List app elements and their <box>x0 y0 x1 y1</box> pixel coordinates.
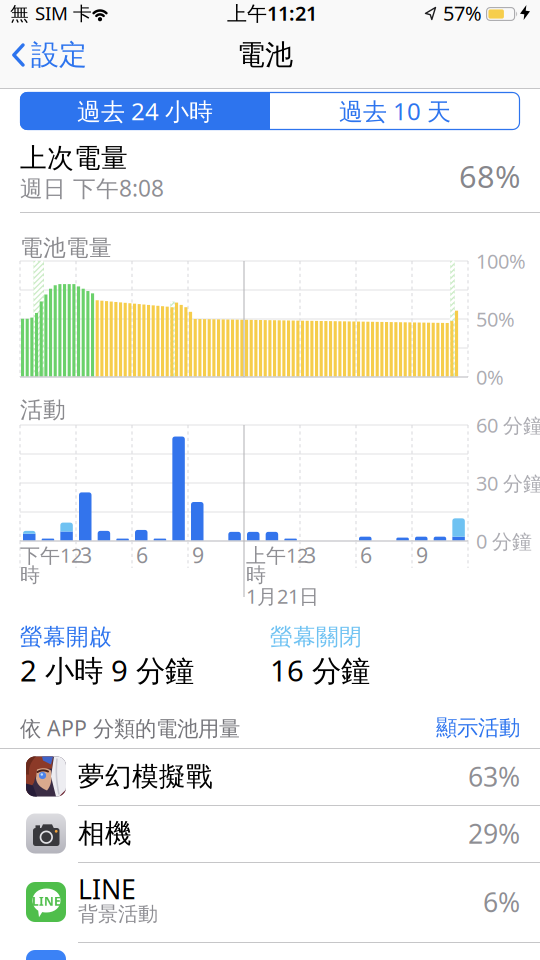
button[interactable]: 過去 10 天 <box>270 92 520 130</box>
staticText: 30 分鐘 <box>476 470 540 496</box>
staticText: 6 <box>360 541 372 569</box>
staticText: 螢幕關閉 <box>270 623 362 651</box>
staticText: 63% <box>468 759 520 794</box>
staticText: 2 小時 9 分鐘 <box>20 650 194 689</box>
staticText: 68% <box>459 156 520 196</box>
staticText: 100% <box>476 248 526 274</box>
staticText: 過去 10 天 <box>339 95 451 127</box>
staticText: 0 分鐘 <box>476 528 532 554</box>
staticText: 電池電量 <box>20 234 112 262</box>
staticText: 時 <box>20 563 40 587</box>
staticText: 16 分鐘 <box>270 650 370 689</box>
staticText: 29% <box>468 816 520 851</box>
staticText: 活動 <box>20 396 66 424</box>
staticText: 夢幻模擬戰 <box>78 760 213 793</box>
button[interactable]: 顯示活動 <box>410 716 520 740</box>
staticText: 6% <box>483 884 520 920</box>
staticText: 9 <box>192 541 204 569</box>
button[interactable]: LINE <box>0 862 540 942</box>
staticText: 0% <box>476 364 504 390</box>
staticText: 9 <box>416 541 428 569</box>
staticText: 6 <box>136 541 148 569</box>
staticText: LINE <box>78 871 136 907</box>
button[interactable]: 相機 <box>0 805 540 862</box>
staticText: 60 分鐘 <box>476 412 540 438</box>
staticText: 50% <box>476 306 515 332</box>
staticText: 上午12 <box>246 542 308 568</box>
staticText: 下午12 <box>20 542 82 568</box>
staticText: 相機 <box>78 817 132 850</box>
staticText: 設定 <box>31 38 87 72</box>
button[interactable]: 夢幻模擬戰 <box>0 748 540 805</box>
staticText: 顯示活動 <box>436 715 520 741</box>
staticText: 無 SIM 卡 <box>10 1 92 25</box>
staticText: 上次電量 <box>20 142 128 174</box>
staticText: 背景活動 <box>78 902 158 926</box>
staticText: 上午11:21 <box>227 0 317 26</box>
staticText: 螢幕開啟 <box>20 623 112 651</box>
staticText: 3 <box>304 541 316 569</box>
staticText: LINE <box>32 893 61 909</box>
button[interactable]: 設定 <box>12 38 88 72</box>
staticText: 過去 24 小時 <box>77 95 213 127</box>
staticText: 1月21日 <box>246 583 319 609</box>
staticText: 57% <box>443 0 482 26</box>
staticText: 時 <box>246 563 266 587</box>
staticText: 週日 下午8:08 <box>20 173 164 203</box>
button[interactable]: 過去 24 小時 <box>20 92 270 130</box>
staticText: 電池 <box>237 38 293 72</box>
staticText: 3 <box>80 541 92 569</box>
staticText: 依 APP 分類的電池用量 <box>20 714 240 742</box>
